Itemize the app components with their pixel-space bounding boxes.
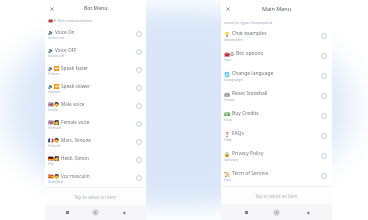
staticText: /french (48, 143, 61, 148)
button[interactable]: 💡 (221, 26, 332, 46)
staticText: 🇬🇧👨 (48, 102, 60, 107)
button[interactable]: 🔊 (45, 25, 146, 43)
staticText: Female voice (61, 119, 90, 125)
button[interactable]: 🇫🇷👨 (45, 133, 146, 151)
staticText: /reset (224, 97, 235, 102)
staticText: 🇩🇪👩 (48, 156, 60, 161)
button[interactable]: Back (118, 207, 129, 218)
staticText: 🇫🇷👨 (48, 138, 60, 143)
staticText: 🔉⏪ (48, 84, 60, 89)
staticText: Change language (232, 70, 274, 77)
staticText: ❓ (224, 131, 231, 137)
staticText: Bot options (236, 50, 264, 57)
staticText: /male (48, 107, 58, 112)
staticText: /slower (48, 89, 61, 94)
button[interactable]: Close (224, 5, 232, 13)
button[interactable]: 🧰⚙ (221, 46, 332, 66)
staticText: /de (48, 161, 54, 166)
button[interactable]: Home (90, 207, 101, 218)
staticText: /buy (224, 117, 233, 122)
button[interactable]: Recents (62, 207, 73, 218)
button[interactable]: 🔒 (221, 146, 332, 166)
button[interactable]: 🇩🇪👩 (45, 151, 146, 169)
staticText: Reset Snowball (232, 90, 268, 97)
staticText: 🧰⚙ (224, 51, 235, 57)
staticText: /set (224, 57, 231, 62)
staticText: Term of Service (232, 170, 269, 177)
staticText: 🤖 (224, 91, 231, 97)
staticText: 💵 (224, 111, 231, 117)
staticText: /voice-on (48, 35, 64, 40)
staticText: Voice On (55, 29, 75, 35)
staticText: Heidi, Simon (61, 155, 89, 161)
staticText: send or type /command (224, 19, 273, 25)
staticText: 🔊 (48, 30, 54, 35)
staticText: Speak faster (61, 65, 89, 71)
staticText: /language (224, 77, 243, 82)
button[interactable]: 🔊 (45, 43, 146, 61)
staticText: Male voice (61, 101, 85, 107)
staticText: 🔉⏩ (48, 66, 60, 71)
button[interactable]: Close (48, 5, 56, 13)
staticText: Tap to select an item (255, 193, 298, 199)
staticText: Buy Credits (232, 110, 259, 117)
staticText: 🇬🇧👩 (48, 120, 60, 125)
staticText: 🔊 (48, 48, 54, 53)
button[interactable]: ❓ (221, 126, 332, 146)
staticText: /voice-off (48, 53, 65, 58)
staticText: 🌐 (224, 71, 231, 77)
staticText: FAQs (232, 130, 244, 137)
staticText: Privacy Policy (232, 150, 264, 157)
staticText: Voz masculin (61, 173, 90, 179)
staticText: 🔒 (224, 151, 231, 157)
staticText: 🇪🇸👨 (48, 174, 60, 179)
button[interactable]: 🤖 (221, 86, 332, 106)
button[interactable]: Home (271, 207, 282, 218)
staticText: Voice OFF (55, 47, 77, 53)
staticText: /faq (224, 137, 232, 142)
button[interactable]: 💵 (221, 106, 332, 126)
button[interactable]: 🇪🇸👨 (45, 169, 146, 187)
staticText: /female (48, 125, 62, 130)
staticText: 🧰⚙ Bot customization (48, 18, 93, 24)
button[interactable]: 🌐 (221, 66, 332, 86)
staticText: Bot Menu (84, 5, 108, 12)
staticText: Marc, Simone (61, 137, 91, 143)
button[interactable]: 🇬🇧👨 (45, 97, 146, 115)
staticText: Speak slower (61, 83, 90, 89)
button[interactable]: 🔉⏩ (45, 61, 146, 79)
staticText: /hombre (48, 179, 64, 184)
staticText: /tos (224, 177, 232, 182)
staticText: Main Menu (262, 5, 292, 12)
staticText: /faster (48, 71, 60, 76)
staticText: 📜 (224, 171, 231, 177)
staticText: 💡 (224, 31, 231, 37)
button[interactable]: Back (302, 207, 313, 218)
button[interactable]: 🇬🇧👩 (45, 115, 146, 133)
button[interactable]: 📜 (221, 166, 332, 186)
staticText: Tap to select an item (74, 194, 117, 200)
button[interactable]: 🔉⏪ (45, 79, 146, 97)
staticText: /privacy (224, 157, 239, 162)
staticText: Chat examples (232, 30, 267, 37)
staticText: /examples (224, 37, 243, 42)
button[interactable]: Recents (241, 207, 252, 218)
